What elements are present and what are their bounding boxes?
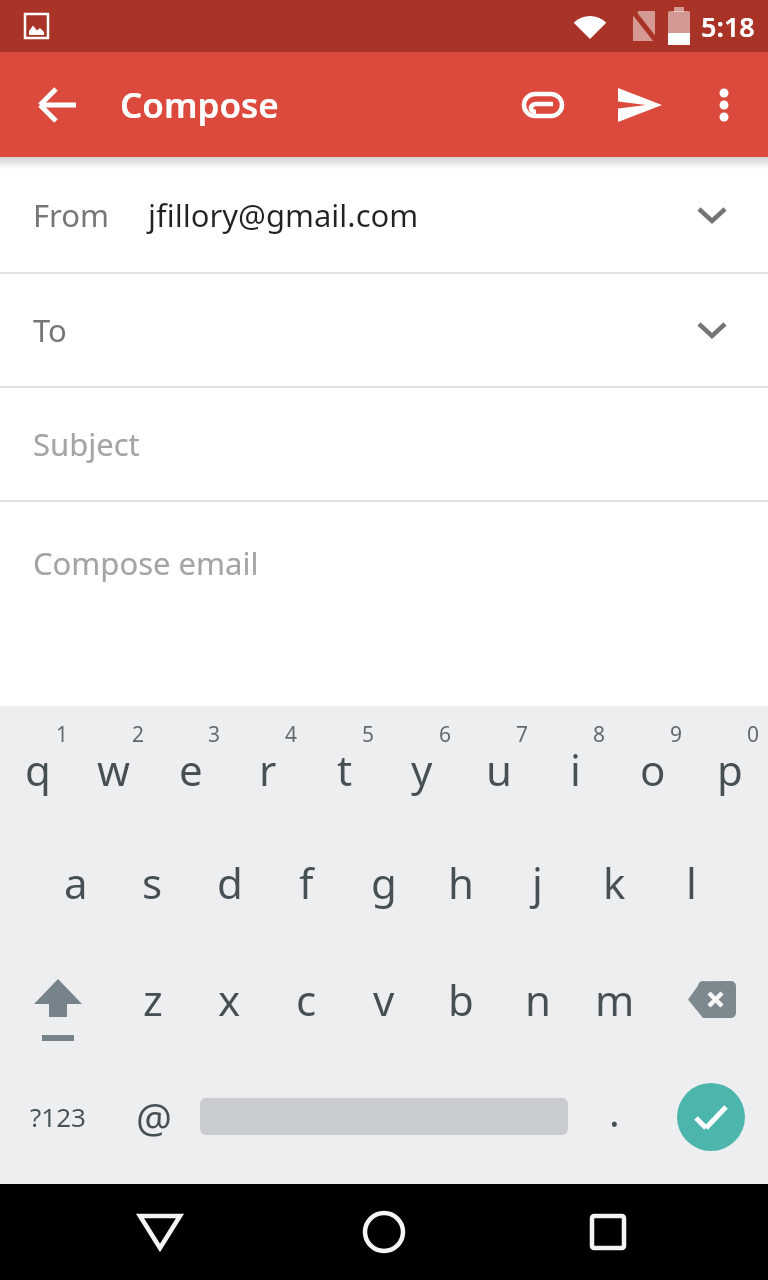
- staticText: 8: [593, 720, 606, 749]
- staticText: ?123: [30, 1099, 86, 1134]
- button[interactable]: 0: [691, 706, 768, 824]
- button[interactable]: 2: [76, 706, 152, 824]
- button[interactable]: [192, 1057, 576, 1184]
- staticText: Subject: [33, 423, 140, 465]
- button[interactable]: 4: [229, 706, 306, 824]
- staticText: d: [217, 854, 243, 911]
- button[interactable]: [360, 1208, 408, 1256]
- staticText: u: [486, 741, 512, 798]
- staticText: l: [686, 854, 697, 911]
- button[interactable]: f: [268, 824, 345, 941]
- button[interactable]: [583, 52, 697, 157]
- staticText: b: [448, 971, 474, 1028]
- staticText: h: [448, 854, 474, 911]
- button[interactable]: k: [576, 824, 653, 941]
- staticText: 5:18: [701, 8, 755, 45]
- staticText: To: [33, 309, 67, 351]
- staticText: c: [296, 971, 317, 1028]
- button[interactable]: [653, 1057, 768, 1184]
- button[interactable]: [584, 1208, 632, 1256]
- button[interactable]: s: [114, 824, 191, 941]
- button[interactable]: g: [345, 824, 422, 941]
- button[interactable]: b: [422, 941, 499, 1057]
- staticText: jfillory@gmail.com: [148, 194, 419, 236]
- staticText: z: [143, 971, 163, 1028]
- button[interactable]: [0, 941, 115, 1057]
- button[interactable]: [503, 52, 583, 157]
- staticText: 6: [439, 720, 452, 749]
- button[interactable]: j: [499, 824, 576, 941]
- staticText: v: [373, 971, 395, 1028]
- staticText: 1: [56, 720, 69, 749]
- button[interactable]: 7: [460, 706, 537, 824]
- staticText: n: [525, 971, 551, 1028]
- button[interactable]: 3: [152, 706, 229, 824]
- staticText: w: [97, 741, 131, 798]
- staticText: j: [532, 854, 543, 911]
- staticText: p: [717, 741, 743, 798]
- staticText: 9: [670, 720, 683, 749]
- staticText: Compose email: [33, 542, 259, 584]
- button[interactable]: m: [576, 941, 653, 1057]
- button[interactable]: 8: [537, 706, 614, 824]
- button[interactable]: [697, 52, 768, 157]
- button[interactable]: [136, 1208, 184, 1256]
- button[interactable]: From: [0, 157, 768, 272]
- staticText: a: [64, 854, 88, 911]
- staticText: 4: [285, 720, 298, 749]
- staticText: 0: [747, 720, 760, 749]
- staticText: e: [179, 741, 203, 798]
- button[interactable]: Subject: [0, 388, 768, 500]
- button[interactable]: z: [115, 941, 191, 1057]
- button[interactable]: c: [268, 941, 345, 1057]
- staticText: g: [371, 854, 397, 911]
- button[interactable]: x: [191, 941, 268, 1057]
- button[interactable]: n: [499, 941, 576, 1057]
- staticText: o: [640, 741, 666, 798]
- button[interactable]: [653, 941, 768, 1057]
- staticText: Compose: [120, 81, 279, 129]
- staticText: y: [411, 741, 433, 798]
- staticText: s: [142, 854, 163, 911]
- button[interactable]: d: [191, 824, 268, 941]
- button[interactable]: l: [653, 824, 730, 941]
- button[interactable]: h: [422, 824, 499, 941]
- button[interactable]: a: [38, 824, 114, 941]
- staticText: f: [299, 854, 314, 911]
- staticText: x: [218, 971, 241, 1028]
- button[interactable]: .: [576, 1057, 653, 1184]
- button[interactable]: @: [115, 1057, 192, 1184]
- staticText: .: [609, 1084, 620, 1138]
- staticText: 5: [362, 720, 375, 749]
- button[interactable]: 9: [614, 706, 691, 824]
- button[interactable]: To: [0, 274, 768, 386]
- button[interactable]: 1: [0, 706, 76, 824]
- button[interactable]: v: [345, 941, 422, 1057]
- staticText: k: [603, 854, 626, 911]
- button[interactable]: 5: [306, 706, 383, 824]
- staticText: From: [33, 194, 110, 236]
- staticText: m: [595, 971, 635, 1028]
- button[interactable]: 6: [383, 706, 460, 824]
- button[interactable]: Compose email: [0, 502, 768, 706]
- button[interactable]: ?123: [0, 1057, 115, 1184]
- staticText: i: [570, 741, 581, 798]
- staticText: 7: [516, 720, 529, 749]
- staticText: q: [25, 741, 51, 798]
- button[interactable]: [0, 52, 116, 157]
- staticText: r: [259, 741, 277, 798]
- staticText: 3: [208, 720, 221, 749]
- staticText: t: [337, 741, 353, 798]
- staticText: 2: [132, 720, 145, 749]
- staticText: @: [136, 1090, 172, 1144]
